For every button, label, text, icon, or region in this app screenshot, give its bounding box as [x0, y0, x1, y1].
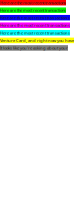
staticText: Here are the most recent transactions: [0, 7, 66, 13]
staticText: Here are the most recent transactions: [0, 30, 70, 36]
staticText: Here are the most recent transactions: [0, 0, 66, 5]
staticText: Venture Card, and right now you have: [0, 38, 74, 43]
staticText: Here are the most recent transactions: [0, 22, 70, 28]
staticText: Here are the most recent transactions: [0, 15, 70, 20]
staticText: It looks like you're asking about your: [0, 45, 68, 51]
